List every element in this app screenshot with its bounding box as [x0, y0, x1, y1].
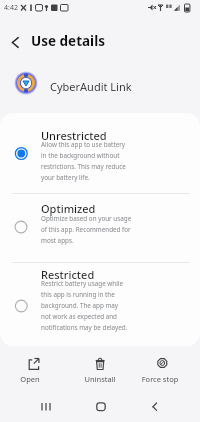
staticText: Use details — [31, 32, 105, 50]
button[interactable]: Unrestricted — [0, 116, 200, 193]
button[interactable]: Open — [10, 352, 50, 386]
staticText: Optimized — [41, 201, 96, 216]
button[interactable] — [140, 396, 172, 418]
button[interactable] — [30, 396, 62, 418]
button[interactable]: Optimized — [0, 194, 200, 262]
staticText: Open — [10, 374, 50, 384]
button[interactable]: Uninstall — [80, 352, 120, 386]
staticText: Optimize based on your usage of this app… — [41, 214, 132, 244]
button[interactable]: Force stop — [140, 352, 180, 386]
staticText: CyberAudit Link — [50, 79, 132, 94]
staticText: Uninstall — [80, 374, 120, 384]
button[interactable]: Restricted — [0, 263, 200, 346]
staticText: Force stop — [140, 374, 180, 384]
staticText: Restricted — [41, 267, 95, 282]
button[interactable] — [85, 396, 117, 418]
button[interactable] — [6, 33, 26, 53]
staticText: Unrestricted — [41, 128, 107, 143]
staticText: 4:42 — [4, 3, 18, 13]
staticText: Restrict battery usage while this app is… — [41, 279, 128, 331]
staticText: Allow this app to use battery in the bac… — [41, 140, 126, 181]
